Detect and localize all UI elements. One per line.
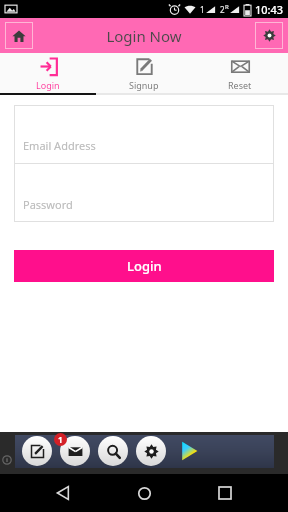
button[interactable]: Play Store	[174, 436, 204, 466]
button[interactable]: Compose	[22, 436, 52, 466]
staticText: 2	[220, 4, 225, 15]
staticText: R	[225, 3, 229, 11]
button[interactable]: Recents	[207, 475, 243, 511]
button[interactable]: Home	[5, 22, 33, 49]
staticText: 1	[200, 4, 205, 15]
button[interactable]: Login	[14, 250, 274, 282]
button[interactable]: Email Address	[14, 105, 274, 163]
staticText: Reset	[228, 79, 252, 91]
button[interactable]: Messages	[60, 436, 90, 466]
button[interactable]: Login	[0, 53, 96, 91]
button[interactable]: Back	[45, 475, 81, 511]
staticText: Email Address	[23, 138, 96, 153]
staticText: Signup	[129, 79, 159, 91]
staticText: 10:43	[255, 2, 284, 17]
button[interactable]: Password	[14, 164, 274, 222]
staticText: Password	[23, 197, 73, 212]
button[interactable]: Home	[126, 475, 162, 511]
staticText: Login	[127, 257, 162, 275]
button[interactable]: Signup	[96, 53, 192, 91]
staticText: Login	[36, 79, 60, 91]
button[interactable]: Reset	[192, 53, 288, 91]
staticText: Login Now	[106, 26, 182, 46]
staticText: 1	[58, 434, 63, 445]
button[interactable]: Settings	[136, 436, 166, 466]
button[interactable]: Search	[98, 436, 128, 466]
button[interactable]: Settings	[255, 22, 283, 49]
